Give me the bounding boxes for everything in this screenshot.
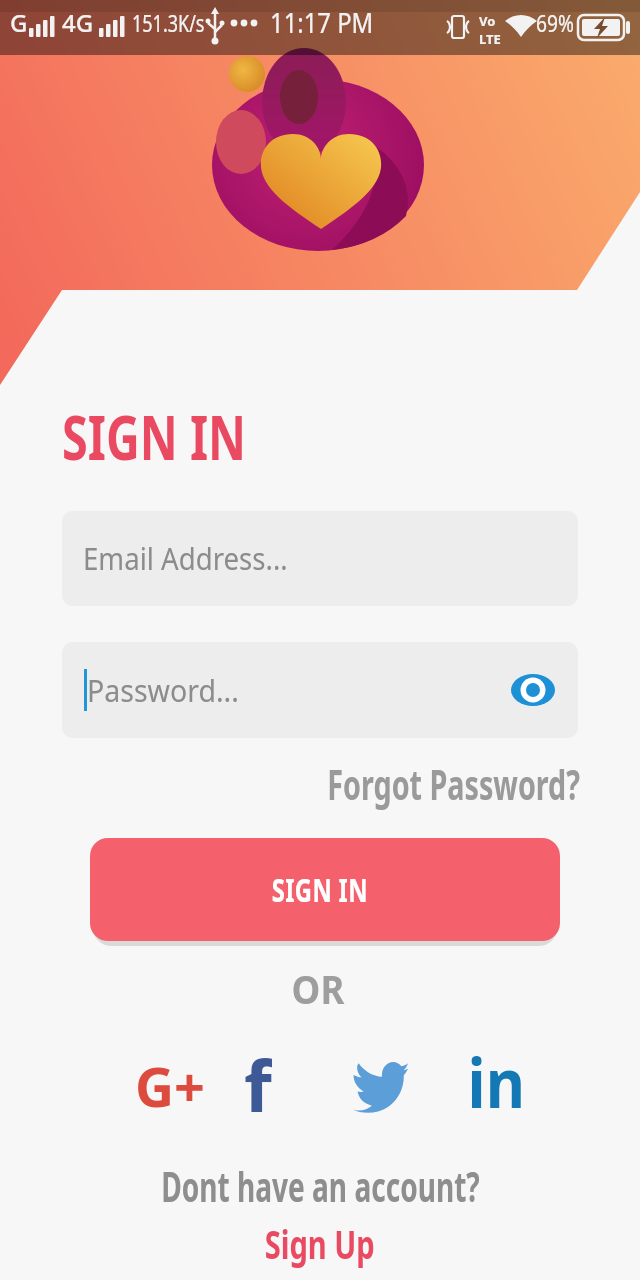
- staticText: 4G: [62, 6, 94, 39]
- button[interactable]: [510, 670, 556, 710]
- staticText: Password...: [87, 670, 239, 711]
- button[interactable]: in: [462, 1035, 530, 1111]
- staticText: Email Address...: [83, 538, 288, 579]
- staticText: 11:17 PM: [270, 4, 373, 41]
- staticText: G+: [135, 1049, 205, 1121]
- staticText: SIGN IN: [62, 395, 247, 478]
- staticText: 151.3K/s: [132, 6, 205, 39]
- staticText: f: [244, 1036, 272, 1112]
- staticText: LTE: [479, 30, 501, 48]
- staticText: Vo: [479, 12, 496, 30]
- button[interactable]: G+: [134, 1049, 206, 1121]
- button[interactable]: f: [226, 1036, 290, 1112]
- button[interactable]: Forgot Password?: [327, 756, 580, 812]
- button[interactable]: [351, 1060, 415, 1120]
- button[interactable]: Sign Up: [265, 1216, 375, 1270]
- staticText: Dont have an account?: [161, 1157, 480, 1214]
- button[interactable]: Password...: [62, 642, 578, 738]
- staticText: in: [468, 1035, 525, 1111]
- staticText: SIGN IN: [272, 867, 368, 912]
- button[interactable]: Email Address...: [62, 511, 578, 606]
- staticText: G: [10, 6, 28, 39]
- button[interactable]: SIGN IN: [90, 838, 560, 941]
- staticText: 69%: [536, 6, 574, 39]
- staticText: OR: [292, 961, 344, 1015]
